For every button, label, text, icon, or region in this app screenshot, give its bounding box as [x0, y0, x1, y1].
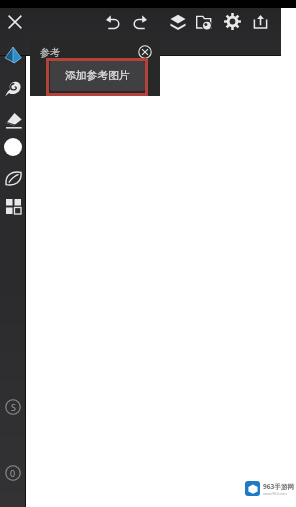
staticText: 添加参考图片: [65, 69, 130, 83]
button[interactable]: Share: [248, 9, 273, 34]
staticText: S: [11, 401, 16, 413]
button[interactable]: Opacity: [0, 460, 26, 486]
staticText: www.963.com: [263, 491, 287, 496]
button[interactable]: Redo: [127, 10, 151, 34]
button[interactable]: 添加参考图片: [50, 61, 145, 91]
button[interactable]: Color: [0, 134, 26, 160]
button[interactable]: Close: [3, 10, 27, 34]
button[interactable]: Brush: [0, 42, 26, 68]
button[interactable]: Close reference panel: [138, 45, 152, 59]
button[interactable]: Smudge: [0, 75, 26, 101]
button[interactable]: Settings: [220, 9, 245, 34]
button[interactable]: Shapes: [0, 165, 26, 191]
staticText: 0: [10, 467, 16, 479]
button[interactable]: Add image: [191, 9, 216, 34]
button[interactable]: Symmetry: [0, 394, 26, 420]
button[interactable]: Undo: [102, 10, 126, 34]
button[interactable]: Eraser: [0, 107, 26, 133]
staticText: 参考: [40, 46, 60, 59]
button[interactable]: Layers: [166, 10, 190, 34]
button[interactable]: Grid: [0, 193, 26, 219]
staticText: 963手游网: [263, 482, 295, 491]
